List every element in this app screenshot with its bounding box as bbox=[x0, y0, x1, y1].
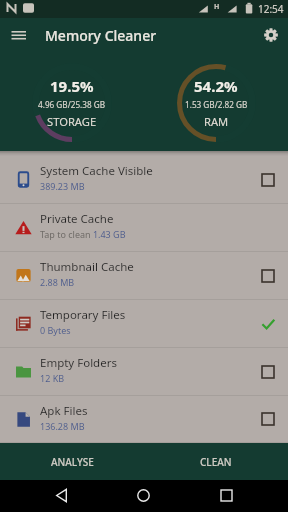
staticText: 0 Bytes bbox=[40, 324, 71, 336]
button[interactable]: Settings bbox=[254, 18, 288, 52]
staticText: 19.5% bbox=[50, 76, 94, 96]
staticText: Tap to clean 1.43 GB bbox=[40, 228, 126, 240]
staticText: H bbox=[214, 2, 220, 12]
button[interactable]: Empty Folders bbox=[0, 348, 288, 396]
button[interactable]: CLEAN bbox=[144, 443, 288, 480]
staticText: Empty Folders bbox=[40, 355, 117, 371]
staticText: System Cache Visible bbox=[40, 163, 153, 179]
staticText: 136.28 MB bbox=[40, 420, 85, 432]
staticText: 12:54 bbox=[258, 2, 284, 16]
staticText: Thumbnail Cache bbox=[40, 259, 134, 275]
staticText: 4.96 GB/25.38 GB bbox=[38, 99, 106, 110]
button[interactable]: Private Cache bbox=[0, 204, 288, 252]
staticText: 389.23 MB bbox=[40, 180, 85, 192]
staticText: Memory Cleaner bbox=[45, 26, 157, 45]
staticText: CLEAN bbox=[200, 455, 232, 469]
staticText: 2.88 MB bbox=[40, 276, 75, 288]
button[interactable]: Thumbnail Cache bbox=[0, 252, 288, 300]
button[interactable]: Temporary Files bbox=[0, 300, 288, 348]
staticText: Private Cache bbox=[40, 211, 114, 227]
staticText: 54.2% bbox=[194, 76, 238, 96]
staticText: 12 KB bbox=[40, 372, 65, 384]
staticText: RAM bbox=[204, 114, 229, 129]
button[interactable]: ANALYSE bbox=[0, 443, 144, 480]
staticText: STORAGE bbox=[47, 114, 97, 129]
staticText: ANALYSE bbox=[51, 455, 94, 469]
button[interactable]: System Cache Visible bbox=[0, 156, 288, 204]
staticText: Temporary Files bbox=[40, 307, 126, 323]
button[interactable]: Apk Files bbox=[0, 396, 288, 443]
button[interactable]: Menu bbox=[0, 18, 34, 52]
staticText: Apk Files bbox=[40, 403, 88, 419]
staticText: 1.53 GB/2.82 GB bbox=[185, 99, 248, 110]
